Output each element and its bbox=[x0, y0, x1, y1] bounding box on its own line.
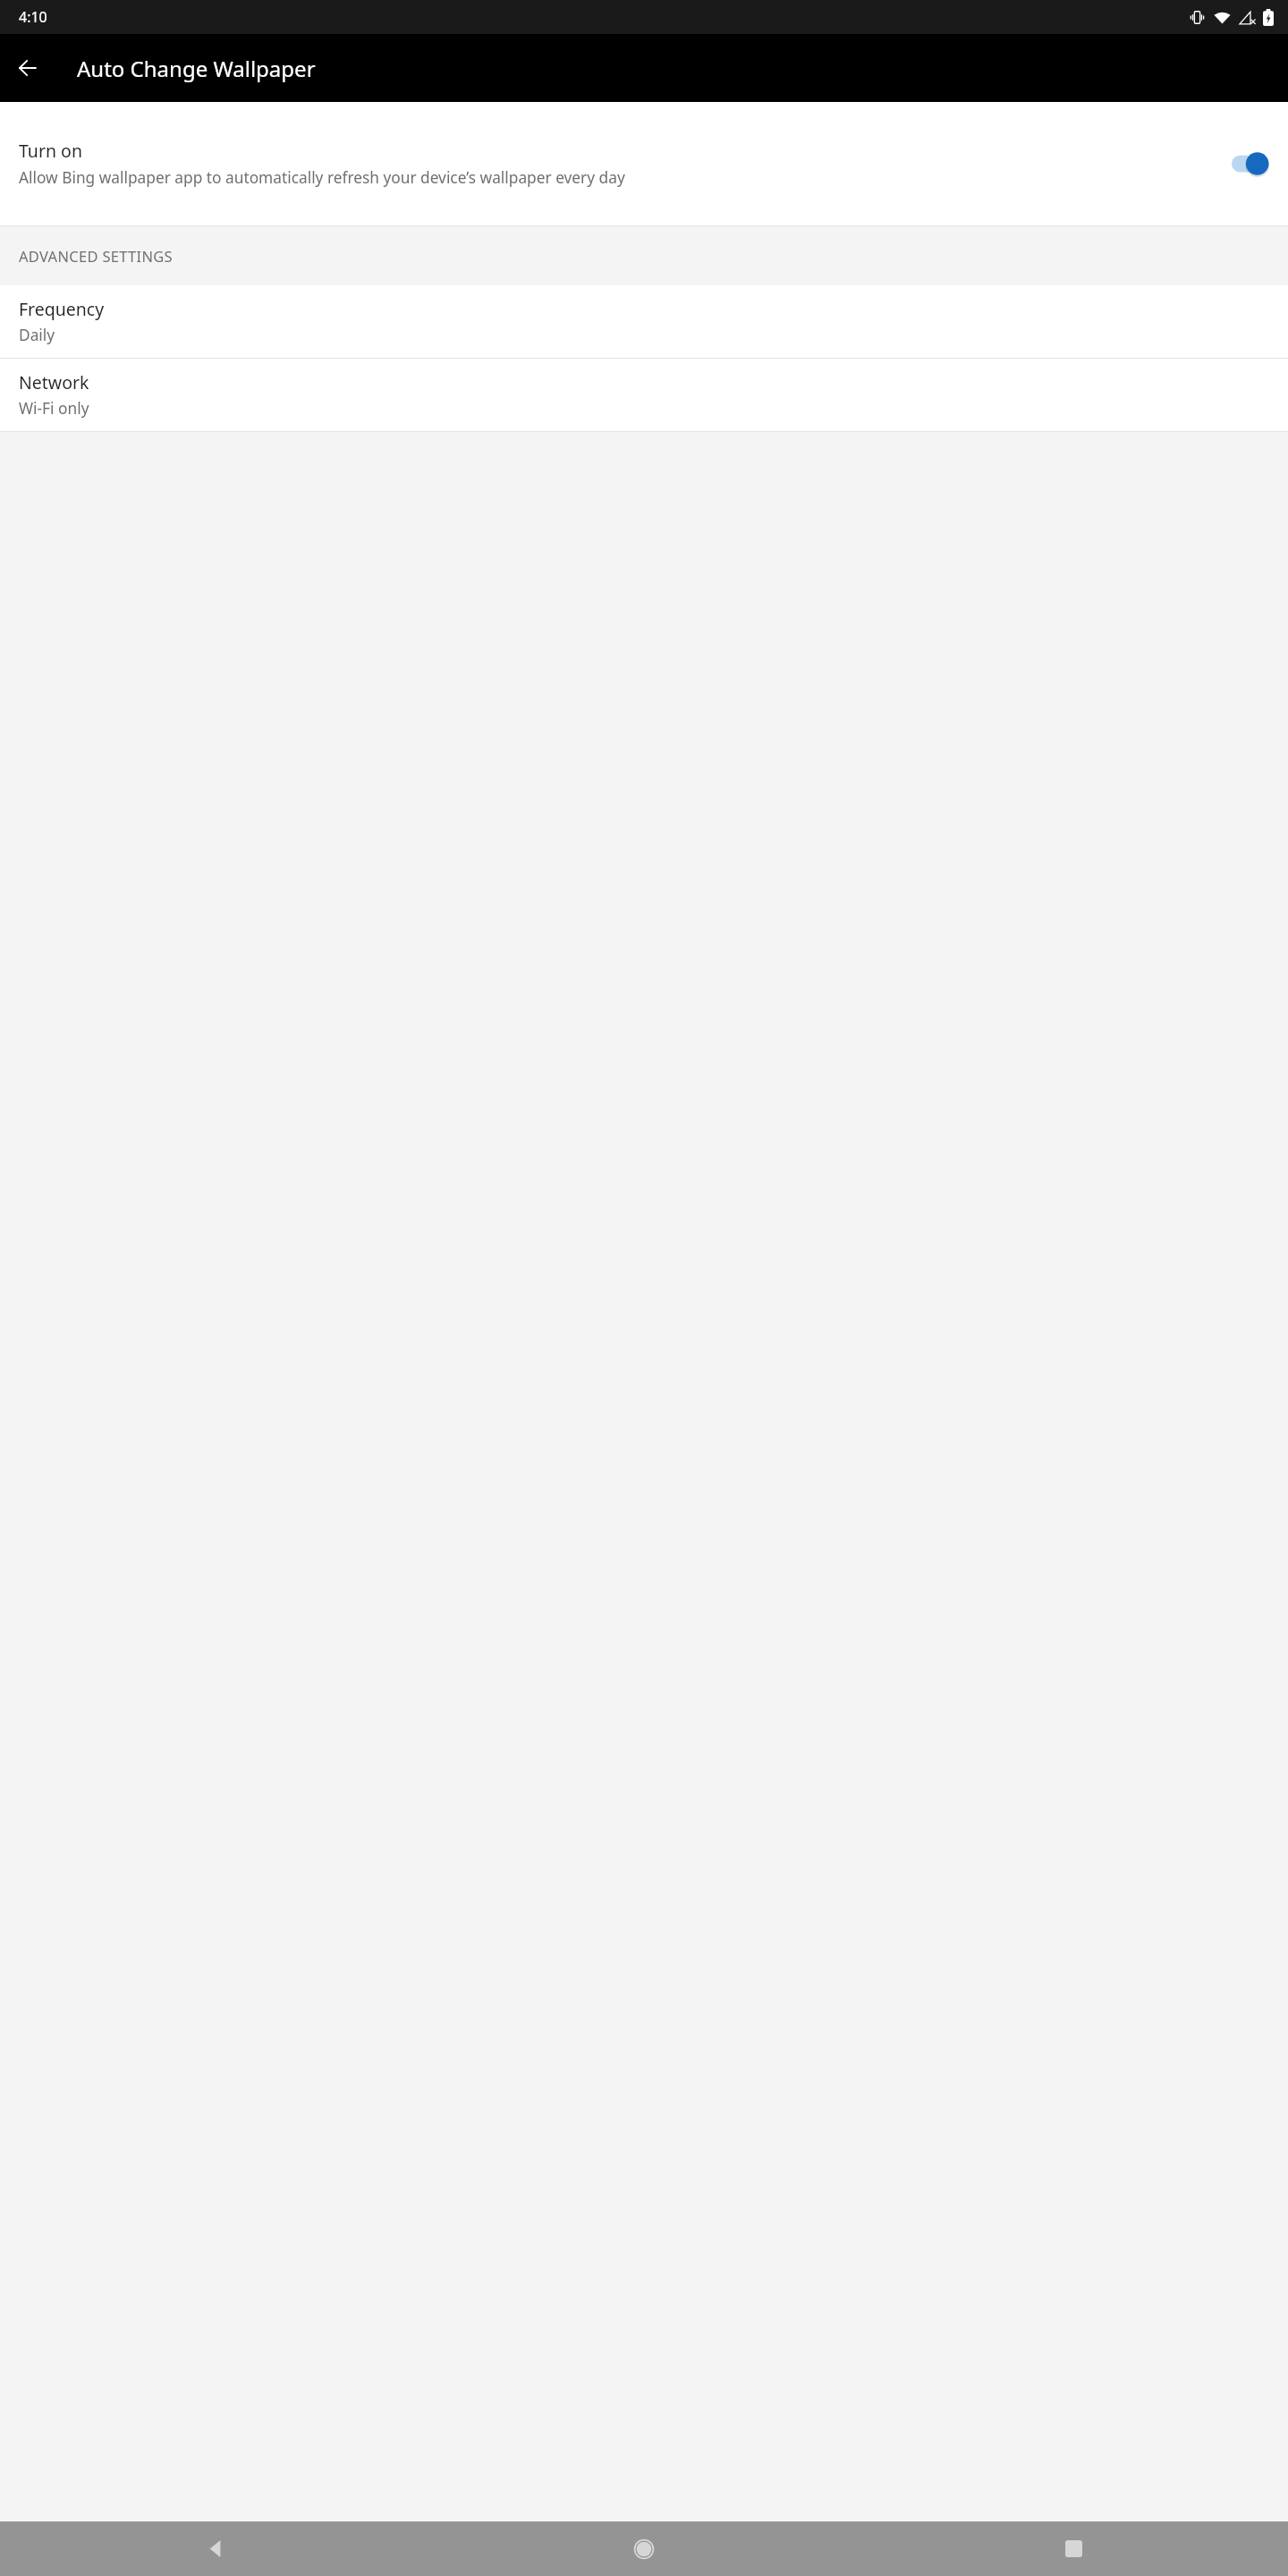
button[interactable]: Turn on bbox=[1232, 150, 1269, 177]
staticText: Auto Change Wallpaper bbox=[77, 54, 316, 83]
button[interactable]: Home bbox=[429, 2521, 859, 2576]
button[interactable]: Recent apps bbox=[859, 2521, 1288, 2576]
staticText: Wi-Fi only bbox=[19, 398, 89, 419]
button[interactable]: Navigate up bbox=[6, 47, 49, 89]
button[interactable]: Network bbox=[0, 359, 1288, 431]
button[interactable]: Turn on bbox=[0, 102, 1288, 225]
button[interactable]: Back bbox=[0, 2521, 429, 2576]
staticText: ADVANCED SETTINGS bbox=[19, 246, 173, 266]
staticText: Daily bbox=[19, 325, 55, 346]
button[interactable]: Frequency bbox=[0, 285, 1288, 358]
staticText: Turn on bbox=[19, 139, 82, 163]
staticText: Allow Bing wallpaper app to automaticall… bbox=[19, 167, 625, 189]
staticText: Frequency bbox=[19, 297, 105, 321]
staticText: 4:10 bbox=[19, 7, 47, 27]
staticText: Network bbox=[19, 370, 89, 394]
